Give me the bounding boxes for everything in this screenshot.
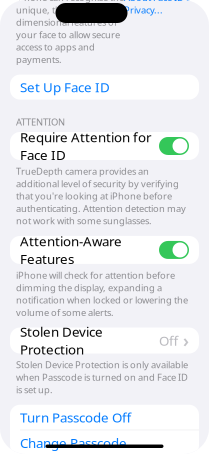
button[interactable]: Change Passcode [10, 430, 199, 454]
staticText: TrueDepth camera provides an additional … [16, 165, 186, 227]
staticText: › [183, 329, 189, 352]
staticText: Turn Passcode Off [20, 408, 131, 426]
staticText: iPhone will check for attention before d… [16, 269, 188, 318]
staticText: Stolen Device Protection is only availab… [16, 358, 188, 396]
button[interactable]: Require Attention for Face ID [10, 132, 199, 160]
button[interactable]: Stolen Device Protection [10, 327, 199, 353]
button[interactable]: Attention-Aware Features [10, 236, 199, 264]
button[interactable]: Set Up Face ID [10, 75, 199, 100]
button[interactable]: Turn Passcode Off [10, 405, 199, 430]
staticText: Set Up Face ID [20, 78, 110, 96]
staticText: Stolen Device Protection [20, 323, 103, 358]
staticText: Off [159, 332, 178, 349]
staticText: About Face ID & Privacy... [124, 0, 193, 16]
staticText: Require Attention for Face ID [20, 128, 152, 164]
staticText: Attention-Aware Features [20, 232, 122, 268]
staticText: ATTENTION [16, 116, 65, 128]
staticText: Change Passcode [20, 434, 127, 451]
staticText: iPhone can recognise the unique, three-d… [16, 0, 124, 66]
